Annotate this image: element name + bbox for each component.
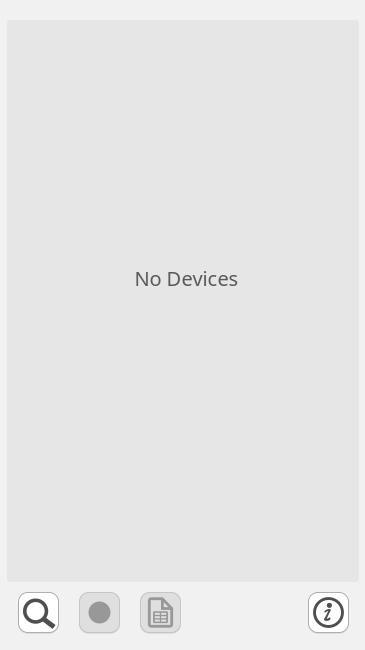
button[interactable]: Documents xyxy=(140,592,181,633)
button[interactable]: Info xyxy=(308,592,349,633)
staticText: No Devices xyxy=(134,265,238,292)
button[interactable]: Record xyxy=(79,592,120,633)
button[interactable]: Search xyxy=(18,592,59,633)
